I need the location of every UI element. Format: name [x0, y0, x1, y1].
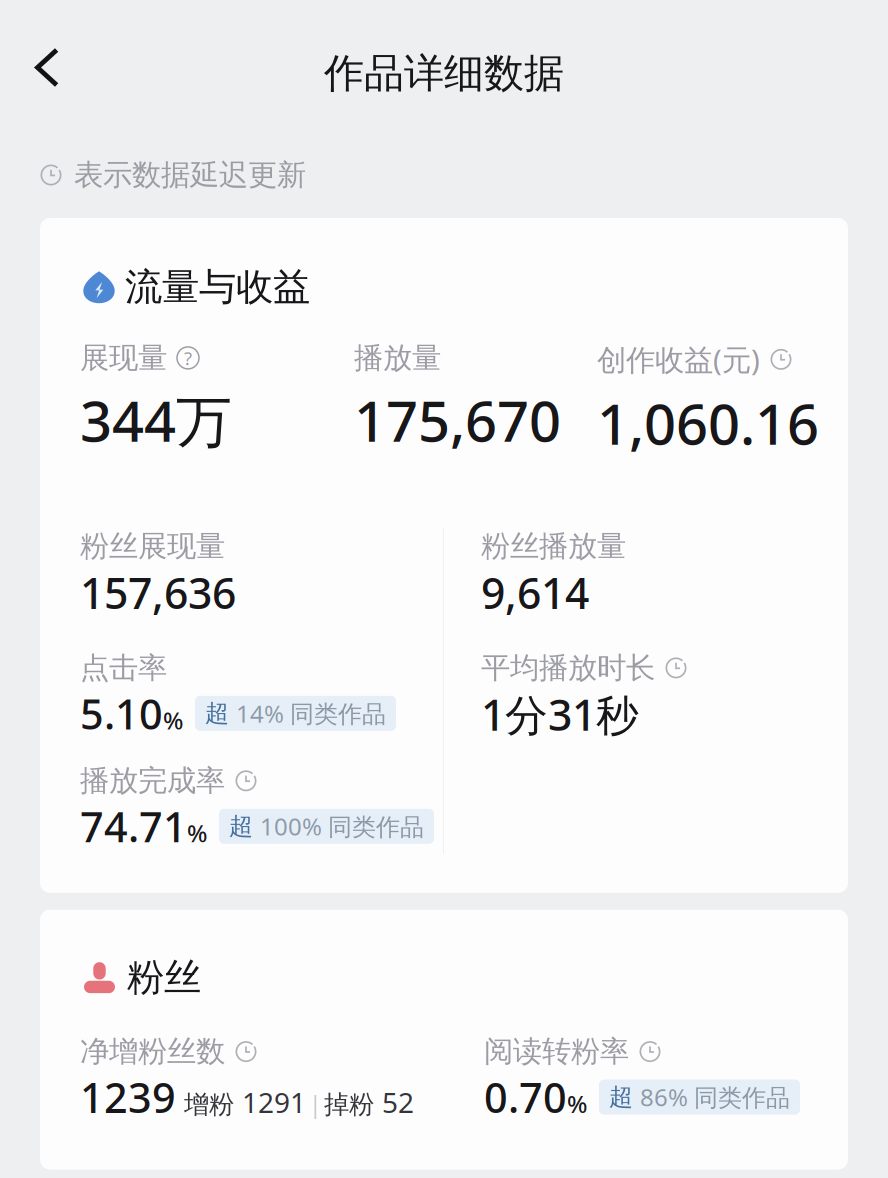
staticText: %: [163, 704, 183, 736]
staticText: 14% 同类作品: [236, 697, 386, 729]
staticText: ?: [184, 345, 192, 370]
button[interactable]: Back: [0, 29, 89, 117]
staticText: 流量与收益: [125, 264, 310, 310]
staticText: 0.70: [484, 1070, 567, 1124]
staticText: 点击率: [80, 650, 167, 686]
staticText: 播放完成率: [80, 763, 225, 799]
staticText: 1,060.16: [597, 386, 819, 460]
staticText: 展现量: [80, 340, 167, 376]
staticText: 创作收益(元): [597, 340, 760, 379]
staticText: 344万: [80, 383, 232, 457]
staticText: 粉丝展现量: [80, 528, 225, 564]
staticText: 1291: [242, 1084, 306, 1121]
staticText: 播放量: [354, 340, 441, 376]
staticText: %: [187, 817, 207, 849]
staticText: 1239: [80, 1070, 176, 1124]
staticText: 掉粉: [324, 1089, 382, 1120]
staticText: 9,614: [481, 564, 589, 621]
staticText: 粉丝: [127, 955, 201, 1001]
staticText: 增粉: [176, 1089, 242, 1120]
staticText: %: [567, 1088, 587, 1120]
staticText: 超: [609, 1082, 640, 1112]
staticText: 5.10: [80, 686, 163, 741]
staticText: 作品详细数据: [324, 49, 564, 98]
staticText: 157,636: [80, 564, 236, 621]
staticText: 175,670: [354, 383, 561, 457]
staticText: 阅读转粉率: [484, 1034, 629, 1070]
staticText: 100% 同类作品: [260, 810, 424, 842]
staticText: 超: [205, 699, 236, 728]
staticText: 表示数据延迟更新: [74, 157, 306, 193]
staticText: 平均播放时长: [481, 650, 655, 686]
staticText: |: [309, 1089, 321, 1119]
staticText: 52: [382, 1084, 414, 1121]
staticText: 1分31秒: [481, 686, 639, 743]
staticText: 超: [229, 811, 260, 841]
staticText: 净增粉丝数: [80, 1034, 225, 1070]
staticText: 86% 同类作品: [640, 1081, 790, 1113]
staticText: 粉丝播放量: [481, 528, 626, 564]
staticText: 74.71: [80, 799, 187, 854]
